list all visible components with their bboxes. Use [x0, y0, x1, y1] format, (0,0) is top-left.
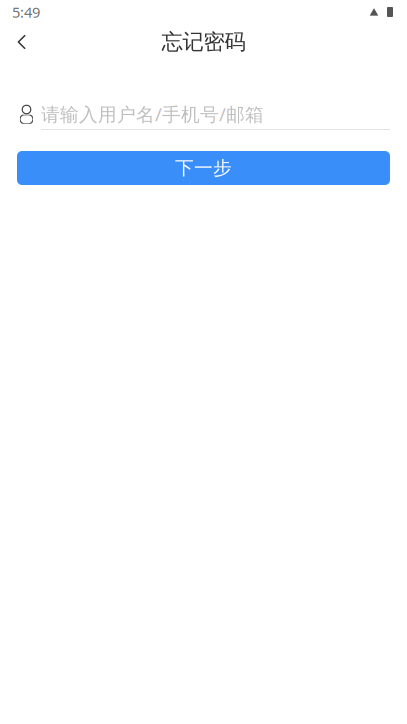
staticText: 忘记密码 — [161, 29, 245, 55]
button[interactable]: Back — [0, 22, 44, 62]
button[interactable]: 下一步 — [17, 151, 390, 185]
staticText: 5:49 — [12, 2, 40, 22]
staticText: 请输入用户名/手机号/邮箱 — [41, 102, 264, 126]
staticText: 下一步 — [175, 156, 232, 179]
